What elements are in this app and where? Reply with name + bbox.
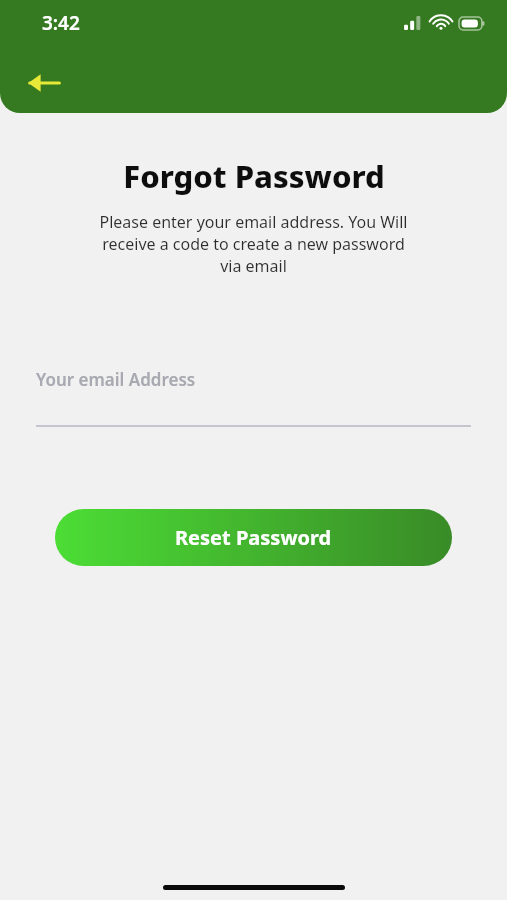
staticText: Please enter your email address. You Wil… xyxy=(34,211,473,277)
staticText: 3:42 xyxy=(42,10,80,36)
button[interactable]: Back xyxy=(20,59,68,107)
staticText: Your email Address xyxy=(36,368,196,391)
button[interactable]: Reset Password xyxy=(55,509,452,566)
staticText: Reset Password xyxy=(175,524,332,551)
staticText: Forgot Password xyxy=(123,155,385,197)
button[interactable]: Your email Address xyxy=(36,368,471,427)
